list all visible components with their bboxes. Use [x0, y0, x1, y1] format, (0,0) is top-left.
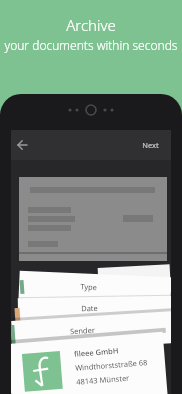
staticText: fileee GmbH [74, 345, 119, 359]
staticText: Next [142, 140, 159, 150]
staticText: Archive [0, 15, 182, 35]
staticText: your documents within seconds [0, 37, 182, 53]
button[interactable]: Next [142, 140, 159, 150]
button[interactable]: Next [11, 130, 171, 160]
staticText: Sender [70, 325, 95, 336]
button[interactable]: fileee GmbH [11, 332, 169, 394]
button[interactable]: Date [18, 296, 171, 326]
staticText: Windthorststraße 68 [75, 357, 148, 373]
staticText: Date [81, 303, 98, 313]
button[interactable]: Type [18, 271, 171, 307]
staticText: 48143 Münster [76, 373, 130, 387]
staticText: Type [80, 281, 97, 292]
button[interactable]: Sender [11, 311, 171, 353]
